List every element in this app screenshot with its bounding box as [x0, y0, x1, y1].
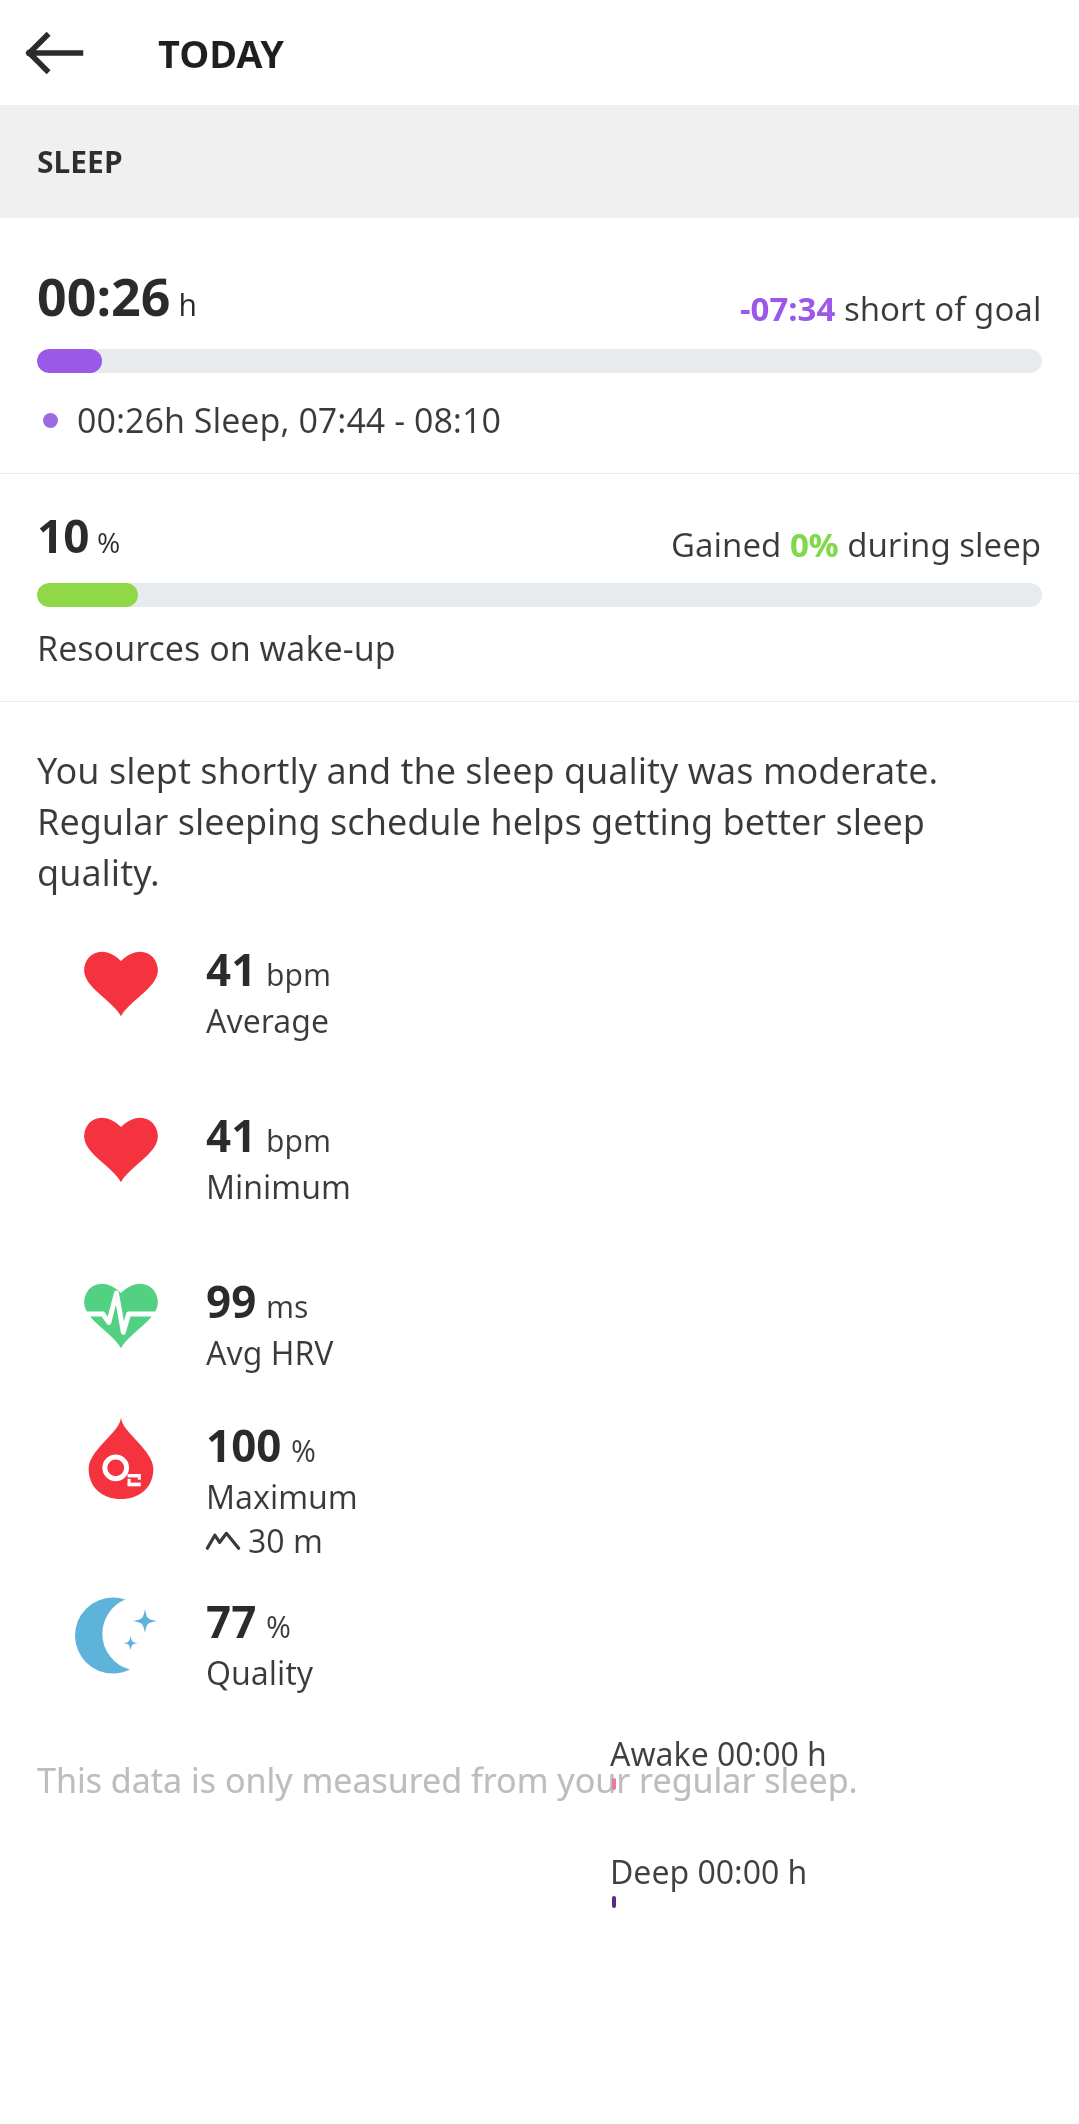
- staticText: Maximum: [206, 1475, 358, 1519]
- staticText: -07:34 short of goal: [740, 286, 1042, 331]
- staticText: 00:26 h: [37, 260, 197, 331]
- staticText: Quality: [206, 1651, 314, 1695]
- staticText: Deep 00:00 h: [610, 1850, 808, 1894]
- button[interactable]: 00:26 h: [0, 218, 1079, 473]
- staticText: SLEEP: [37, 141, 123, 182]
- button[interactable]: Back: [20, 17, 92, 89]
- button[interactable]: 99: [0, 1271, 1079, 1375]
- staticText: 100: [206, 1415, 282, 1475]
- staticText: %: [291, 1430, 316, 1471]
- staticText: Awake 00:00 h: [610, 1732, 827, 1776]
- button[interactable]: 100: [0, 1415, 1079, 1563]
- staticText: 77: [206, 1591, 257, 1651]
- staticText: Gained 0% during sleep: [671, 522, 1042, 567]
- staticText: 30 m: [248, 1519, 323, 1563]
- staticText: You slept shortly and the sleep quality …: [37, 744, 1049, 897]
- staticText: Resources on wake-up: [37, 625, 396, 671]
- staticText: This data is only measured from your reg…: [37, 1757, 858, 1803]
- staticText: ms: [266, 1286, 309, 1327]
- staticText: 99: [206, 1271, 257, 1331]
- staticText: bpm: [266, 1120, 331, 1161]
- button[interactable]: 77: [0, 1591, 1079, 1695]
- button[interactable]: 41: [0, 1105, 1079, 1209]
- staticText: bpm: [266, 954, 331, 995]
- staticText: 10 %: [37, 504, 121, 567]
- staticText: Average: [206, 999, 330, 1043]
- button[interactable]: 41: [0, 939, 1079, 1043]
- button[interactable]: 10 %: [0, 474, 1079, 701]
- staticText: TODAY: [158, 27, 285, 79]
- staticText: 41: [206, 939, 257, 999]
- staticText: Minimum: [206, 1165, 351, 1209]
- staticText: %: [266, 1606, 291, 1647]
- staticText: Avg HRV: [206, 1331, 334, 1375]
- staticText: 00:26h Sleep, 07:44 - 08:10: [77, 397, 501, 443]
- staticText: 41: [206, 1105, 257, 1165]
